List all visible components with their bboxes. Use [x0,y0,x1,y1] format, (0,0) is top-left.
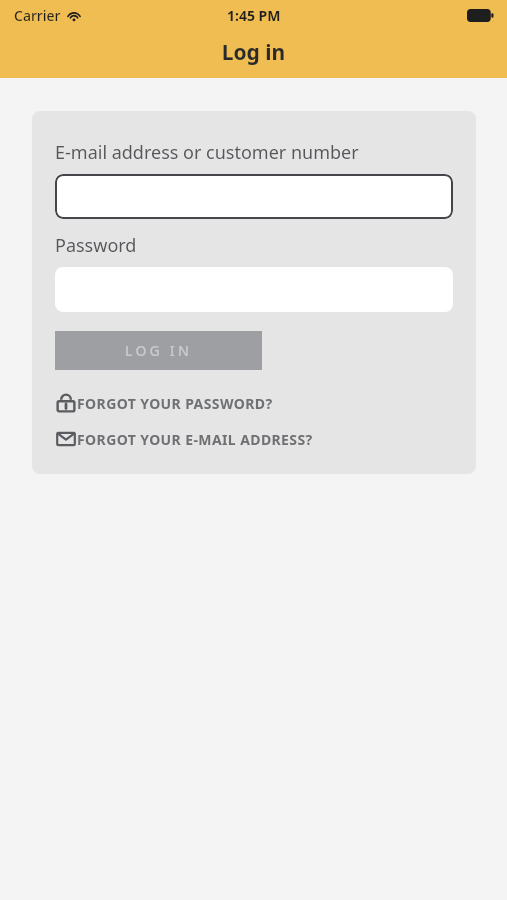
staticText: Password [55,233,137,258]
staticText: Carrier [14,6,61,25]
staticText: Log in [0,38,507,67]
button[interactable]: FORGOT YOUR E-MAIL ADDRESS? [55,428,313,450]
staticText: FORGOT YOUR PASSWORD? [77,394,273,413]
staticText: LOG IN [125,341,193,360]
button[interactable]: LOG IN [55,331,262,370]
button[interactable]: FORGOT YOUR PASSWORD? [55,392,273,414]
staticText: E-mail address or customer number [55,140,359,165]
staticText: 1:45 PM [227,6,281,25]
staticText: FORGOT YOUR E-MAIL ADDRESS? [77,430,313,449]
button[interactable] [55,174,453,219]
